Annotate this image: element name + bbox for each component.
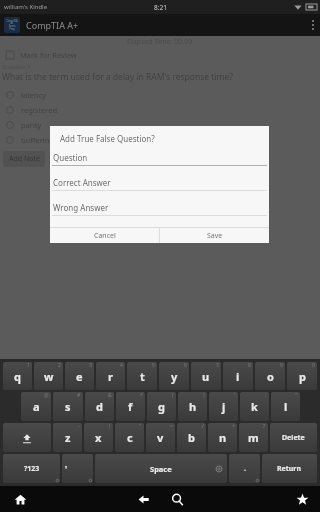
- button[interactable]: k: [240, 392, 269, 421]
- staticText: 1: [27, 362, 30, 369]
- button[interactable]: c: [115, 423, 144, 452]
- button[interactable]: n: [208, 423, 237, 452]
- button[interactable]: Save: [160, 228, 269, 243]
- button[interactable]: w: [34, 362, 63, 390]
- staticText: w: [44, 369, 54, 384]
- staticText: 0: [312, 362, 315, 369]
- button[interactable]: Home: [10, 489, 30, 509]
- staticText: ": [139, 423, 142, 430]
- button[interactable]: buffering: [6, 132, 320, 147]
- staticText: a: [33, 399, 40, 414]
- button[interactable]: y: [159, 362, 189, 390]
- button[interactable]: Back: [133, 489, 153, 509]
- staticText: t: [140, 369, 145, 384]
- staticText: -: [78, 423, 80, 430]
- staticText: :: [265, 392, 267, 399]
- staticText: n: [219, 430, 227, 445]
- staticText: /: [202, 423, 204, 430]
- button[interactable]: Favorites: [292, 489, 312, 509]
- staticText: 4: [120, 362, 123, 369]
- button[interactable]: parity: [6, 117, 320, 132]
- button[interactable]: e: [65, 362, 94, 390]
- button[interactable]: h: [178, 392, 207, 421]
- staticText: registered: [21, 105, 58, 115]
- button[interactable]: q: [3, 362, 32, 390]
- button[interactable]: g: [147, 392, 176, 421]
- staticText: 6: [184, 362, 187, 369]
- button[interactable]: ?123: [3, 454, 60, 483]
- button[interactable]: Cancel: [50, 228, 159, 243]
- staticText: m: [248, 430, 259, 445]
- button[interactable]: ': [62, 454, 93, 483]
- button[interactable]: u: [191, 362, 221, 390]
- staticText: =: [170, 423, 173, 430]
- button[interactable]: .: [229, 454, 260, 483]
- button[interactable]: l: [271, 392, 300, 421]
- button[interactable]: Add Note: [3, 151, 45, 167]
- button[interactable]: Delete: [270, 423, 317, 452]
- button[interactable]: j: [209, 392, 238, 421]
- staticText: Space: [150, 464, 172, 474]
- button[interactable]: a: [21, 392, 51, 421]
- staticText: Add True False Question?: [60, 133, 155, 144]
- button[interactable]: i: [223, 362, 253, 390]
- staticText: h: [189, 399, 197, 414]
- button[interactable]: Shift: [3, 423, 51, 452]
- staticText: Add Note: [9, 154, 40, 164]
- staticText: #: [77, 392, 81, 399]
- button[interactable]: Wrong Answer: [50, 200, 269, 225]
- staticText: 2: [58, 362, 61, 369]
- staticText: Wrong Answer: [53, 202, 109, 213]
- button[interactable]: Question: [50, 150, 269, 175]
- staticText: *: [140, 392, 143, 399]
- staticText: f: [128, 399, 133, 414]
- staticText: @: [44, 392, 49, 399]
- staticText: u: [202, 369, 210, 384]
- staticText: (: [172, 392, 174, 399]
- staticText: e: [76, 369, 83, 384]
- button[interactable]: p: [287, 362, 317, 390]
- button[interactable]: b: [177, 423, 206, 452]
- staticText: william's Kindle: [4, 3, 48, 11]
- staticText: ): [203, 392, 205, 399]
- staticText: Question: [53, 152, 88, 163]
- button[interactable]: s: [53, 392, 83, 421]
- staticText: x: [95, 430, 102, 445]
- staticText: parity: [21, 120, 42, 130]
- staticText: r: [108, 369, 113, 384]
- staticText: d: [96, 399, 103, 414]
- staticText: 8: [248, 362, 251, 369]
- staticText: What is the term used for a delay in RAM…: [2, 71, 234, 83]
- staticText: 9: [280, 362, 283, 369]
- staticText: p: [299, 369, 306, 384]
- button[interactable]: f: [116, 392, 145, 421]
- button[interactable]: r: [96, 362, 125, 390]
- staticText: 7: [216, 362, 219, 369]
- button[interactable]: t: [127, 362, 157, 390]
- staticText: z: [65, 430, 71, 445]
- button[interactable]: Space: [95, 454, 227, 483]
- staticText: q: [14, 369, 21, 384]
- staticText: Mark for Review: [20, 50, 77, 60]
- button[interactable]: Return: [262, 454, 317, 483]
- button[interactable]: Search: [167, 489, 187, 509]
- button[interactable]: z: [53, 423, 82, 452]
- button[interactable]: o: [255, 362, 285, 390]
- button[interactable]: d: [85, 392, 114, 421]
- staticText: .: [244, 464, 246, 474]
- staticText: 5: [152, 362, 155, 369]
- staticText: 8:21: [154, 3, 167, 12]
- staticText: y: [171, 369, 178, 384]
- staticText: 3: [89, 362, 92, 369]
- button[interactable]: x: [84, 423, 113, 452]
- button[interactable]: m: [239, 423, 268, 452]
- button[interactable]: Correct Answer: [50, 175, 269, 200]
- staticText: Correct Answer: [53, 177, 111, 188]
- button[interactable]: v: [146, 423, 175, 452]
- staticText: CompTIA A+ Exam Prep: [6, 19, 18, 31]
- staticText: latency: [21, 90, 47, 100]
- staticText: Return: [277, 464, 302, 474]
- staticText: ": [295, 392, 298, 399]
